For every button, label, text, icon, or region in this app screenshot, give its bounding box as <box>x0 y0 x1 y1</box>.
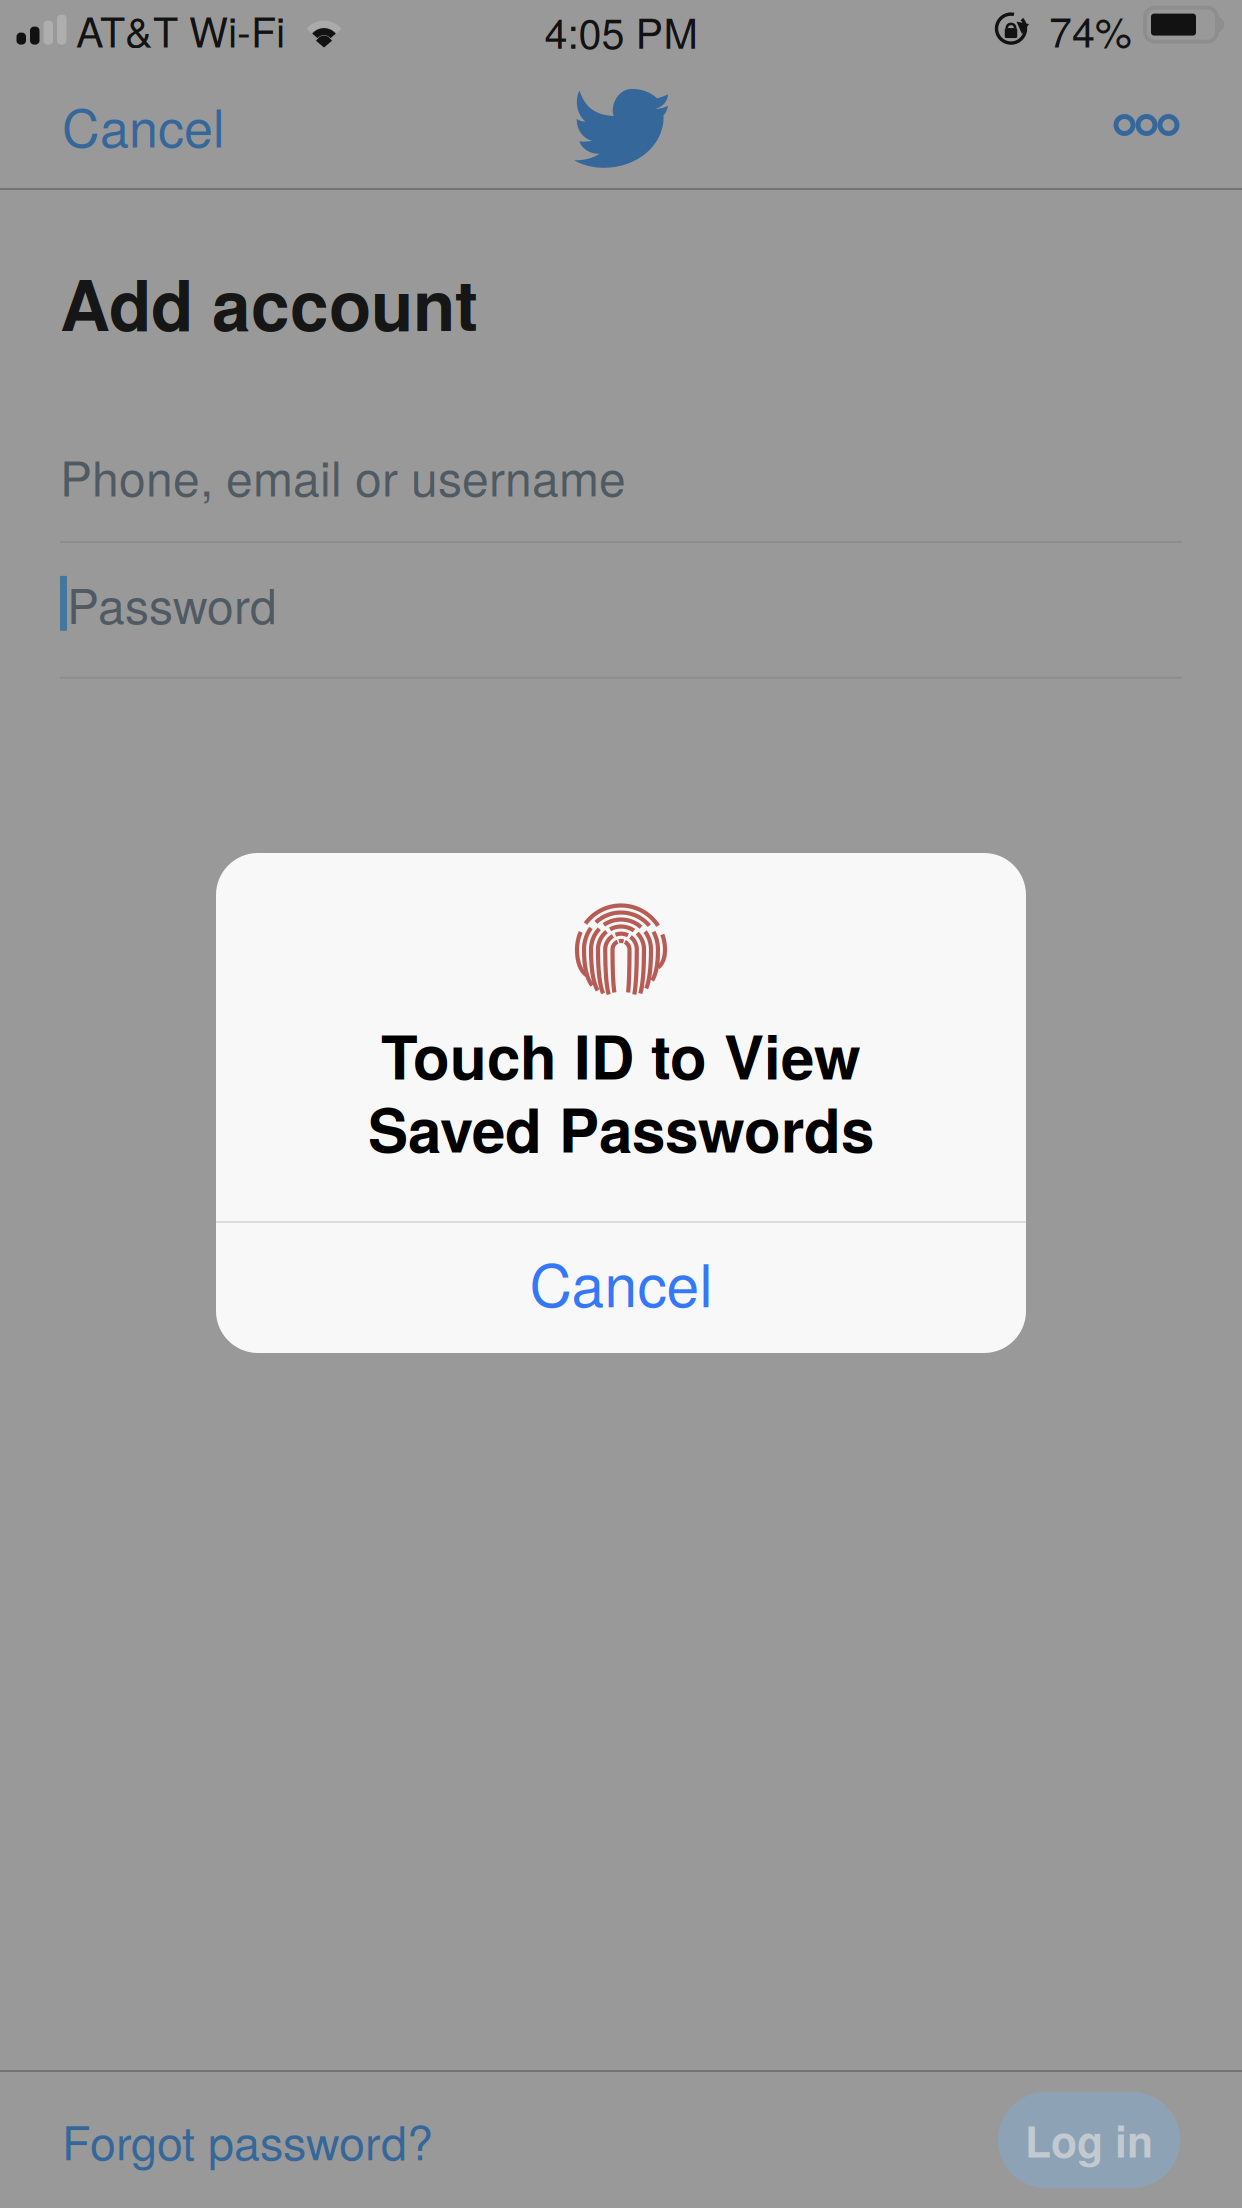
staticText: AT&T Wi-Fi <box>76 0 285 59</box>
button[interactable]: Log in <box>998 2092 1180 2188</box>
staticText: 74% <box>1049 0 1132 59</box>
staticText: 4:05 PM <box>544 1 697 61</box>
staticText: Saved Passwords <box>368 1085 874 1171</box>
staticText: Cancel <box>529 1240 712 1324</box>
staticText: Forgot password? <box>62 2107 433 2173</box>
staticText: Password <box>67 569 277 638</box>
staticText: Log in <box>1025 2109 1153 2171</box>
staticText: Cancel <box>62 88 225 162</box>
button[interactable]: Phone, email or username <box>60 441 1182 543</box>
button[interactable]: Cancel <box>216 1217 1026 1347</box>
button[interactable]: More options <box>1086 62 1200 188</box>
staticText: Add account <box>60 253 478 352</box>
staticText: Touch ID to View <box>381 1012 861 1098</box>
button[interactable]: Password <box>60 569 1182 679</box>
button[interactable]: Forgot password? <box>62 2087 433 2193</box>
staticText: Phone, email or username <box>60 441 626 510</box>
button[interactable]: Cancel <box>42 62 245 188</box>
